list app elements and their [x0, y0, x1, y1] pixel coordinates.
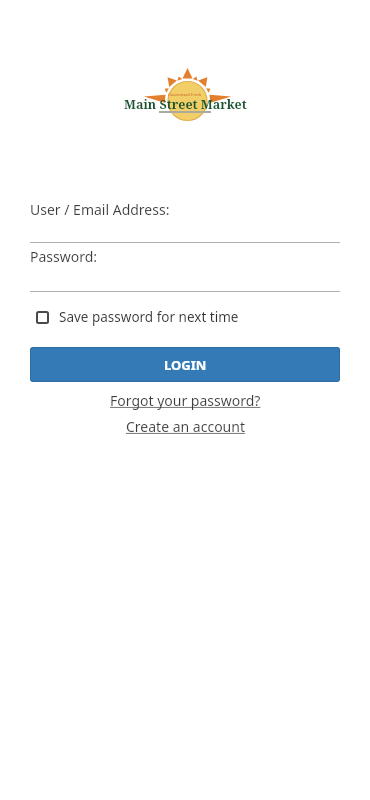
- staticText: Guaranteed Fresh: [168, 92, 202, 97]
- button[interactable]: Save password for next time: [36, 308, 239, 326]
- staticText: Password:: [30, 247, 98, 266]
- button[interactable]: Forgot your password?: [110, 391, 261, 410]
- button[interactable]: Create an account: [126, 417, 245, 436]
- button[interactable]: LOGIN: [30, 347, 340, 382]
- staticText: LOGIN: [164, 356, 207, 374]
- staticText: User / Email Address:: [30, 200, 170, 219]
- staticText: Save password for next time: [59, 308, 239, 326]
- staticText: Main Street Market: [124, 96, 247, 113]
